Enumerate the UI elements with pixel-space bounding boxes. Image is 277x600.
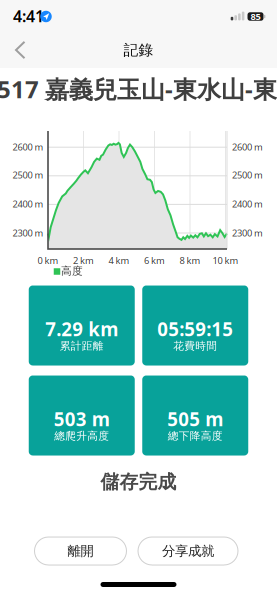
staticText: 2300 m [12, 227, 43, 239]
staticText: 記錄 [123, 41, 153, 59]
staticText: 2500 m [12, 169, 43, 181]
staticText: 05:59:15 [157, 317, 233, 341]
staticText: 505 m [167, 407, 223, 431]
staticText: 0 km [37, 254, 58, 267]
staticText: 2600 m [12, 141, 43, 153]
staticText: 分享成就 [162, 543, 214, 559]
staticText: 4 km [108, 254, 129, 267]
staticText: 2400 m [232, 198, 263, 210]
staticText: 6 km [144, 254, 165, 267]
staticText: 2400 m [12, 198, 43, 210]
staticText: 離開 [67, 543, 93, 559]
staticText: 10 km [212, 254, 238, 267]
staticText: 503 m [54, 407, 110, 431]
staticText: 2 km [73, 254, 94, 267]
staticText: 高度 [61, 264, 83, 277]
staticText: 517 嘉義兒玉山-東水山-東水山 [0, 73, 277, 105]
staticText: 7.29 km [45, 317, 118, 341]
staticText: 儲存完成 [100, 470, 176, 493]
button[interactable]: 分享成就 [138, 537, 238, 565]
staticText: 總爬升高度 [54, 429, 109, 442]
staticText: 2500 m [232, 169, 263, 181]
button[interactable]: Back [3, 33, 37, 67]
staticText: 2600 m [232, 141, 263, 153]
staticText: 8 km [179, 254, 200, 267]
staticText: 累計距離 [60, 339, 104, 352]
button[interactable]: 離開 [34, 537, 126, 565]
staticText: 花費時間 [173, 339, 217, 352]
staticText: 4:41 [13, 5, 44, 27]
staticText: 85 [250, 10, 260, 23]
staticText: 總下降高度 [168, 429, 223, 442]
staticText: 2300 m [232, 227, 263, 239]
